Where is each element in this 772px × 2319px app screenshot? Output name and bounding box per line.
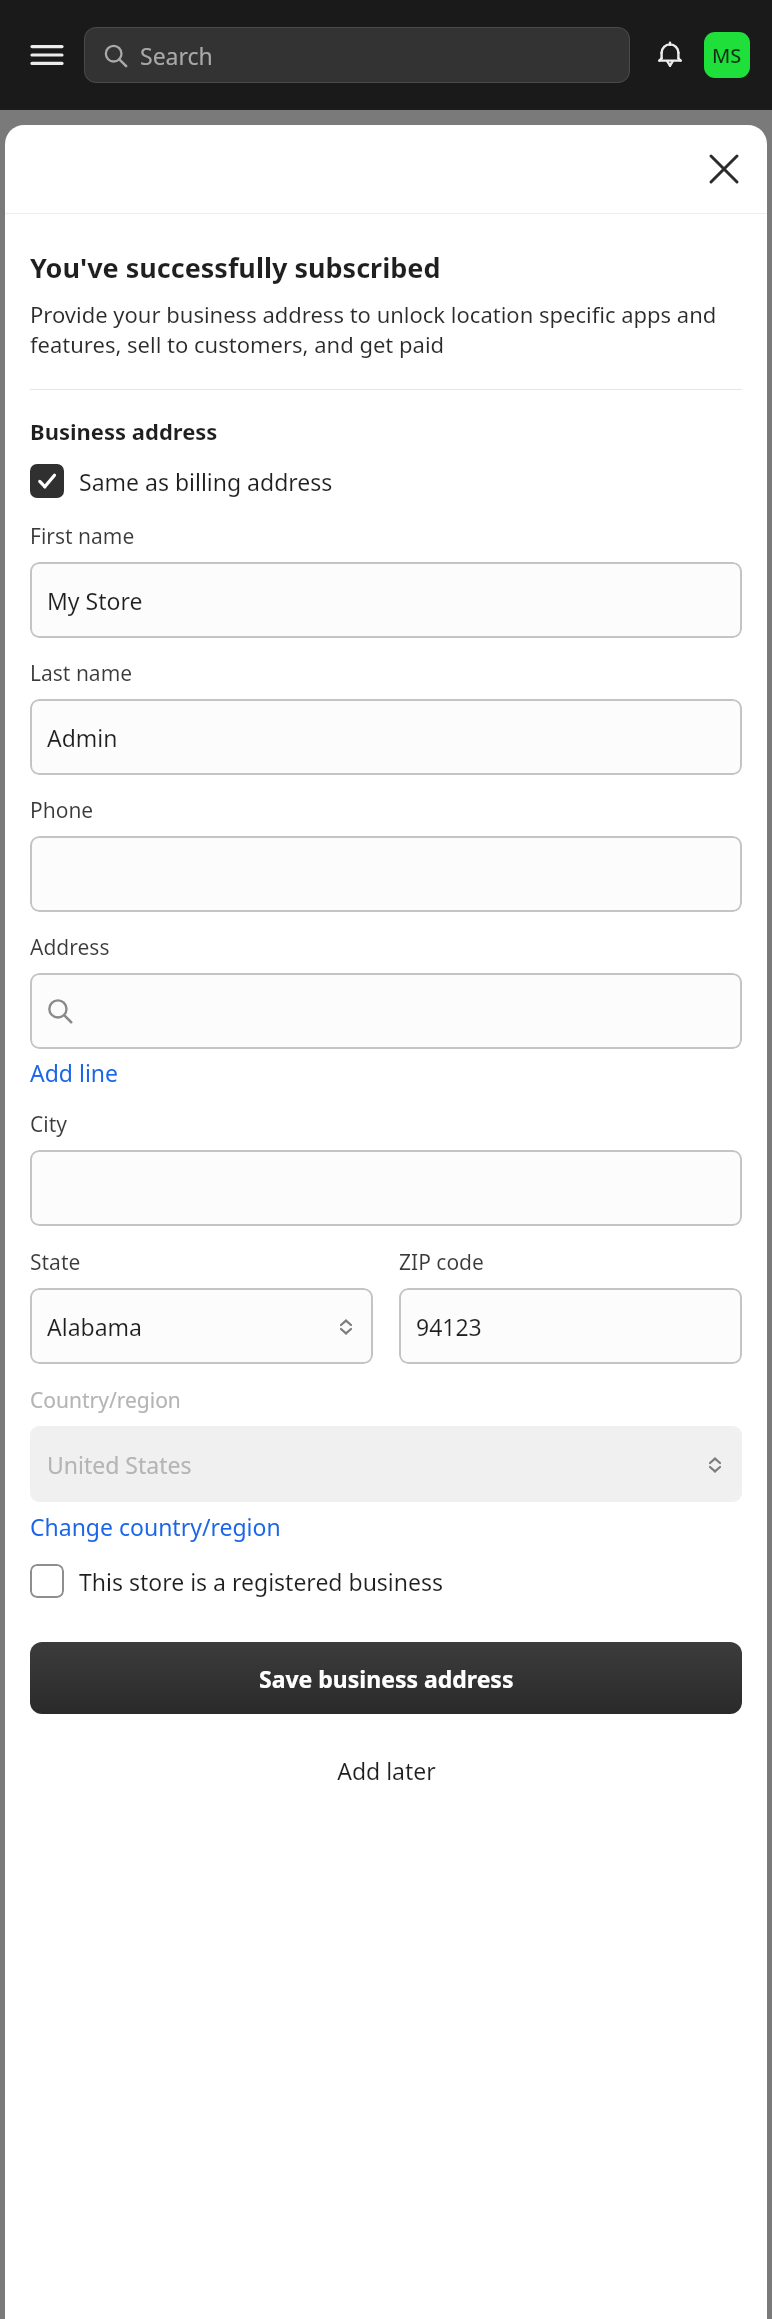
staticText: My Store [47, 585, 143, 616]
staticText: This store is a registered business [79, 1566, 444, 1597]
button[interactable]: Search [84, 27, 630, 83]
staticText: Business address [30, 416, 218, 446]
staticText: 94123 [416, 1311, 482, 1342]
button[interactable]: United States [30, 1426, 742, 1502]
button[interactable]: Same as billing address [30, 464, 333, 498]
button[interactable]: Notifications [646, 31, 694, 79]
button[interactable] [30, 973, 742, 1049]
button[interactable]: 94123 [399, 1288, 742, 1364]
staticText: Change country/region [30, 1511, 281, 1542]
staticText: Same as billing address [79, 466, 333, 497]
staticText: Admin [47, 722, 118, 753]
button[interactable]: Change country/region [30, 1511, 281, 1542]
button[interactable]: Alabama [30, 1288, 373, 1364]
staticText: Provide your business address to unlock … [30, 299, 742, 360]
staticText: Phone [30, 796, 94, 825]
staticText: United States [47, 1449, 192, 1480]
button[interactable]: Admin [30, 699, 742, 775]
button[interactable]: MS [704, 32, 750, 78]
staticText: Address [30, 933, 110, 962]
staticText: Search [140, 40, 213, 71]
button[interactable]: Add later [30, 1742, 742, 1798]
button[interactable]: My Store [30, 562, 742, 638]
button[interactable]: Save business address [30, 1642, 742, 1714]
staticText: You've successfully subscribed [30, 249, 441, 286]
staticText: Add later [337, 1755, 436, 1786]
staticText: Last name [30, 659, 133, 688]
staticText: Add line [30, 1057, 119, 1088]
staticText: Alabama [47, 1311, 142, 1342]
staticText: ZIP code [399, 1248, 484, 1277]
button[interactable]: Menu [22, 30, 72, 80]
button[interactable]: Close [695, 140, 753, 198]
staticText: Country/region [30, 1386, 181, 1415]
button[interactable] [30, 1150, 742, 1226]
staticText: MS [712, 42, 742, 69]
button[interactable]: This store is a registered business [30, 1564, 444, 1598]
staticText: State [30, 1248, 81, 1277]
staticText: City [30, 1110, 67, 1139]
staticText: First name [30, 522, 135, 551]
staticText: Save business address [259, 1663, 514, 1694]
button[interactable]: Add line [30, 1057, 119, 1088]
button[interactable] [30, 836, 742, 912]
